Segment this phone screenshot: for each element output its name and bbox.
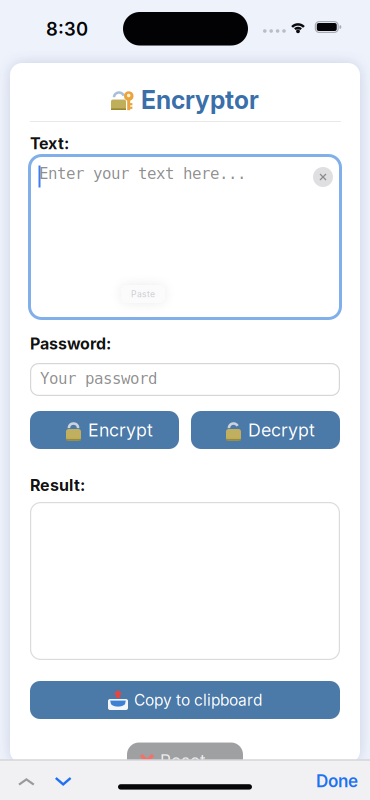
staticText: Decrypt	[248, 419, 315, 440]
staticText: Enter your text here...	[39, 164, 246, 183]
staticText: 8:30	[46, 18, 88, 40]
staticText: Encrypt	[88, 419, 153, 440]
button[interactable]: Encrypt	[30, 411, 179, 449]
staticText: Result:	[30, 476, 85, 495]
button[interactable]: Paste	[121, 285, 165, 303]
staticText: Encryptor	[141, 85, 259, 114]
staticText: Password:	[30, 334, 111, 353]
button[interactable]: Clear text	[313, 167, 333, 187]
staticText: Copy to clipboard	[134, 691, 262, 709]
staticText: Your password	[40, 369, 157, 388]
button[interactable]: Decrypt	[191, 411, 340, 449]
staticText: Done	[316, 771, 358, 791]
button[interactable]: Next field	[55, 777, 72, 786]
staticText: Paste	[131, 289, 155, 299]
button[interactable]: Reset	[127, 742, 243, 775]
button[interactable]: Previous field	[18, 778, 35, 786]
button[interactable]: Done	[316, 771, 358, 791]
staticText: Text:	[30, 134, 69, 153]
staticText: Reset	[160, 751, 206, 771]
button[interactable]: Copy to clipboard	[30, 681, 340, 719]
